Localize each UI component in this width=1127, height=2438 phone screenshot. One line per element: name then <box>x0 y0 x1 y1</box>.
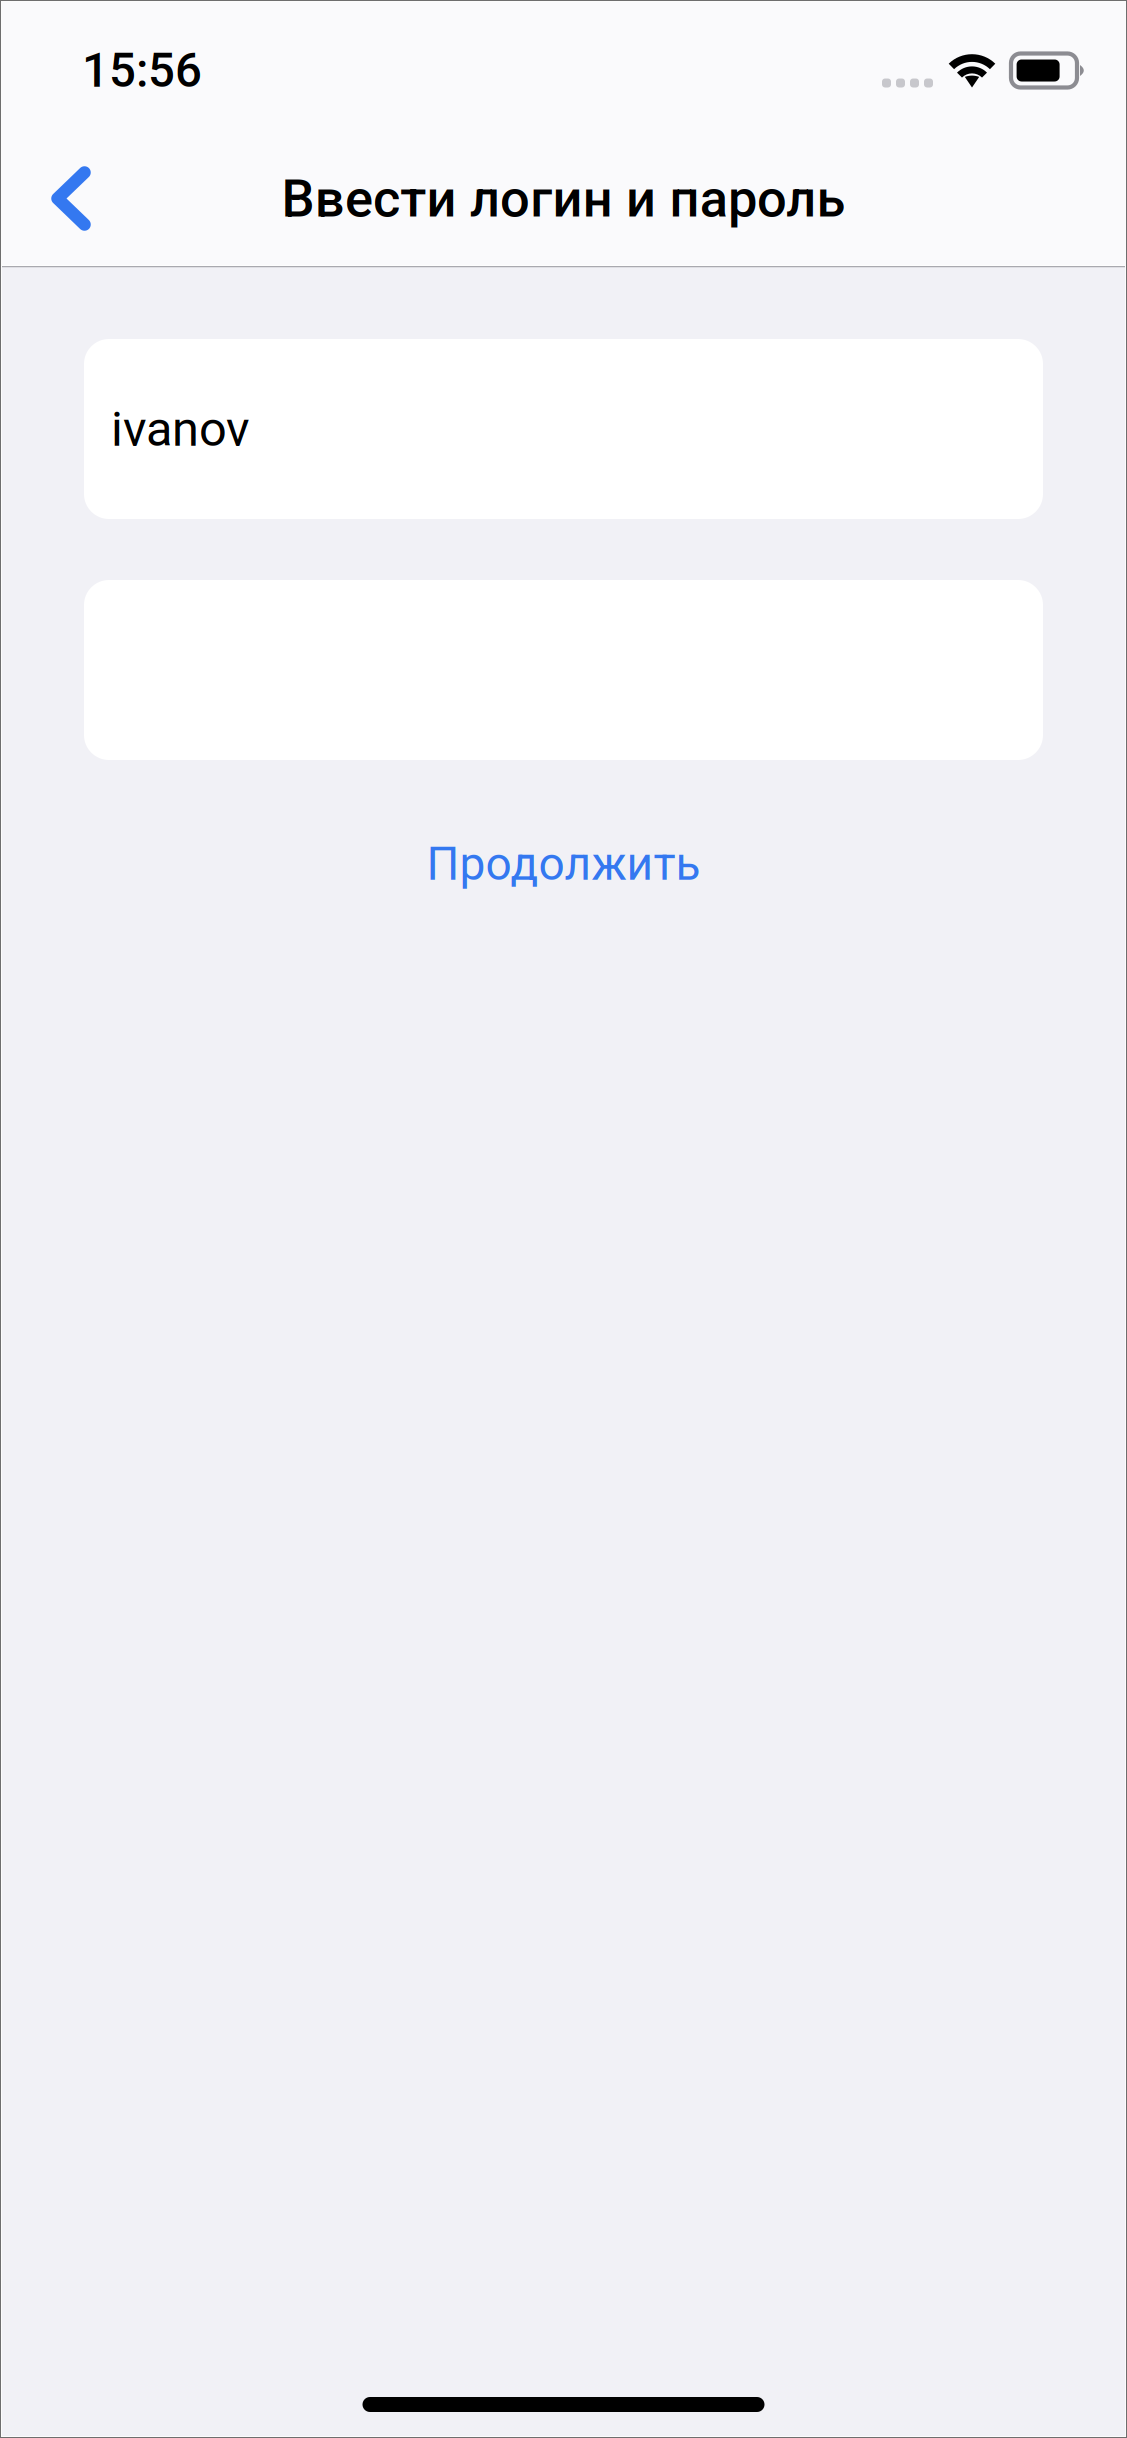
staticText: 15:56 <box>82 43 202 98</box>
staticText: ivanov <box>111 400 250 457</box>
staticText: Ввести логин и пароль <box>281 168 845 229</box>
button[interactable]: Продолжить <box>84 828 1043 900</box>
staticText: Продолжить <box>426 837 700 891</box>
button[interactable]: Логин <box>84 339 1043 519</box>
button[interactable]: Назад <box>23 143 119 253</box>
